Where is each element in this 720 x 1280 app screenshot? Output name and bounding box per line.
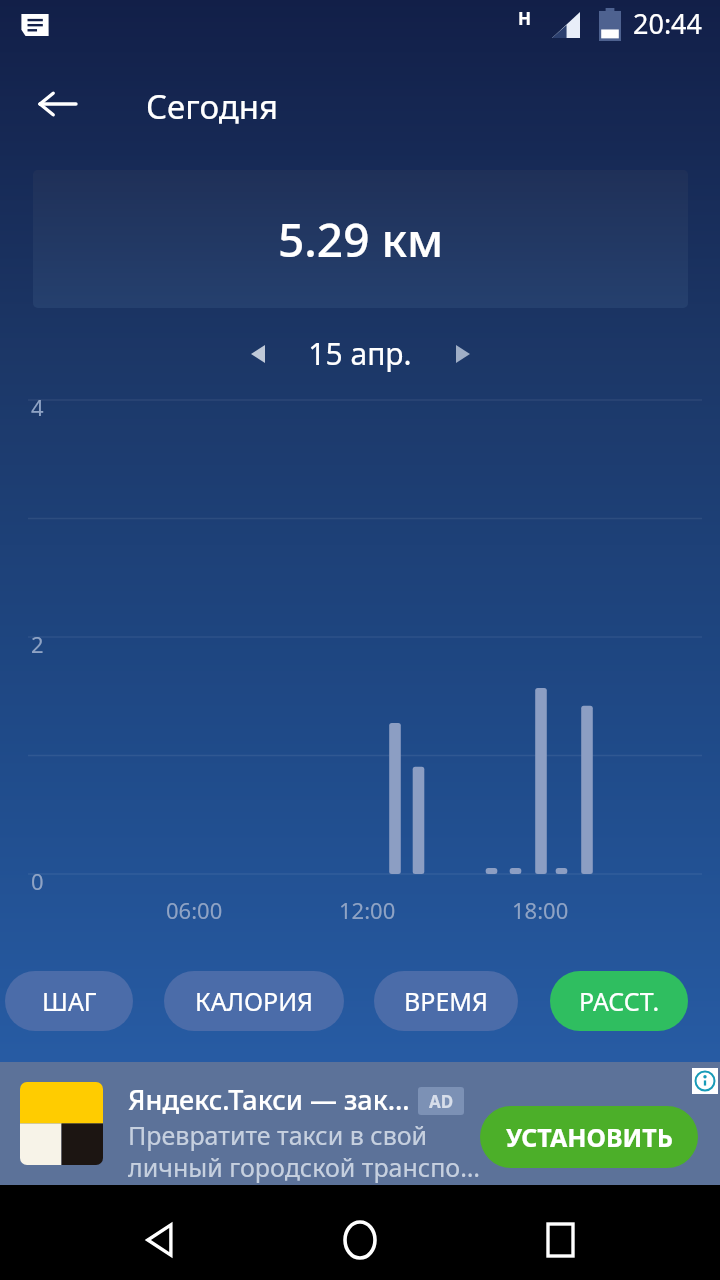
staticText: H — [518, 7, 532, 30]
button[interactable]: Previous day — [238, 334, 278, 374]
staticText: 18:00 — [512, 895, 569, 925]
staticText: УСТАНОВИТЬ — [506, 1120, 673, 1154]
button[interactable]: 5.29 км — [33, 170, 688, 308]
staticText: РАССТ. — [579, 984, 660, 1018]
staticText: AD — [429, 1090, 454, 1113]
staticText: ШАГ — [42, 984, 97, 1018]
staticText: Яндекс.Такси — зак… — [128, 1081, 410, 1118]
staticText: ВРЕМЯ — [404, 984, 488, 1018]
button[interactable]: КАЛОРИЯ — [164, 971, 344, 1031]
button[interactable]: Next day — [443, 334, 483, 374]
button[interactable]: Home — [320, 1200, 400, 1280]
button[interactable]: УСТАНОВИТЬ — [480, 1106, 698, 1168]
staticText: 2 — [31, 629, 44, 659]
button[interactable]: ШАГ — [5, 971, 133, 1031]
button[interactable]: Ad information — [692, 1068, 718, 1094]
staticText: 0 — [31, 866, 44, 896]
staticText: личный городской транспо… — [128, 1150, 480, 1184]
staticText: КАЛОРИЯ — [195, 984, 314, 1018]
button[interactable]: РАССТ. — [550, 971, 688, 1031]
staticText: 12:00 — [339, 895, 396, 925]
button[interactable]: Яндекс.Такси — зак… — [0, 1062, 720, 1185]
button[interactable]: ВРЕМЯ — [374, 971, 518, 1031]
button[interactable]: Recent apps — [520, 1200, 600, 1280]
button[interactable]: Back — [120, 1200, 200, 1280]
staticText: 15 апр. — [0, 333, 720, 374]
staticText: Сегодня — [146, 84, 279, 129]
button[interactable]: Messages — [18, 8, 52, 42]
staticText: Превратите такси в свой — [128, 1118, 428, 1152]
staticText: 5.29 км — [278, 208, 444, 271]
staticText: 4 — [31, 392, 44, 422]
button[interactable]: Back — [28, 75, 86, 133]
staticText: 20:44 — [633, 5, 703, 42]
staticText: 06:00 — [166, 895, 223, 925]
